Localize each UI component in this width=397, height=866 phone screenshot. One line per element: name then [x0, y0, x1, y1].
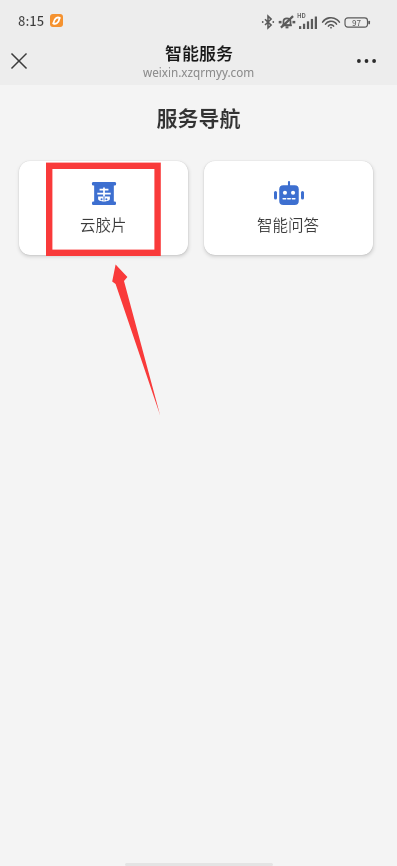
staticText: 智能问答 — [257, 213, 320, 235]
staticText: 97 — [352, 17, 362, 29]
button[interactable]: More options — [335, 37, 397, 85]
button[interactable]: 智能问答 — [204, 161, 373, 255]
staticText: 云胶片 — [80, 213, 127, 235]
button[interactable]: 云胶片 — [19, 161, 188, 255]
staticText: 服务导航 — [0, 102, 397, 132]
staticText: weixin.xzqrmyy.com — [143, 64, 255, 80]
button[interactable]: Close — [0, 37, 38, 85]
staticText: 8:15 — [18, 11, 45, 30]
staticText: 智能服务 — [165, 40, 233, 65]
staticText: HD — [297, 11, 306, 20]
